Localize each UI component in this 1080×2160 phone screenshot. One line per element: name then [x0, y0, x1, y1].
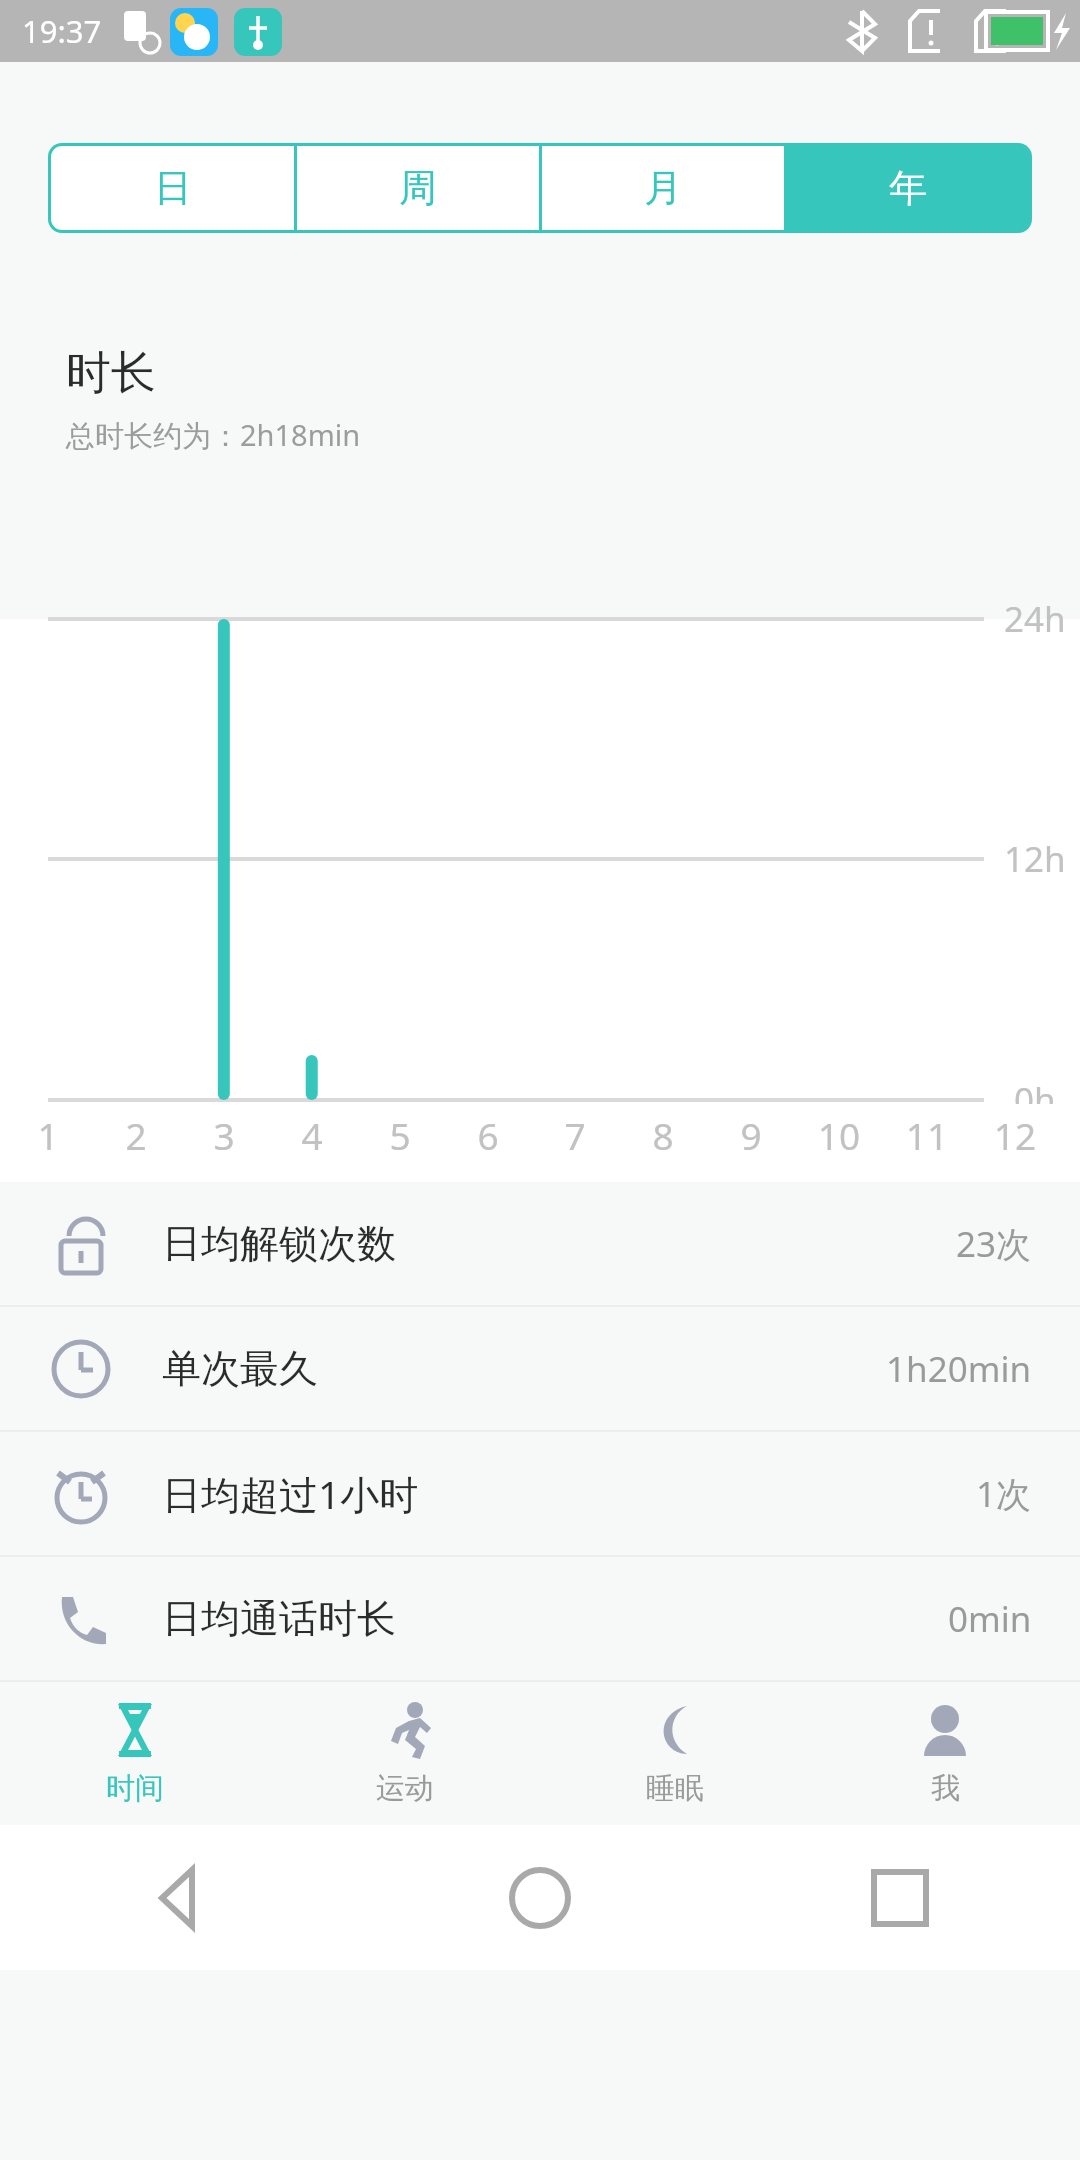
staticText: 23次 [956, 1220, 1032, 1268]
button[interactable]: 日均解锁次数 [0, 1182, 1080, 1305]
staticText: 日均超过1小时 [162, 1467, 419, 1520]
staticText: 时间 [106, 1770, 164, 1807]
staticText: 6 [463, 1110, 513, 1160]
staticText: 9 [726, 1110, 776, 1160]
staticText: 2 [111, 1110, 161, 1160]
staticText: 我 [931, 1770, 960, 1807]
staticText: 10 [814, 1110, 864, 1160]
staticText: 12h [1004, 835, 1066, 883]
button[interactable]: Back [0, 1825, 360, 1970]
button[interactable]: 周 [297, 146, 539, 230]
button[interactable]: 日均超过1小时 [0, 1432, 1080, 1555]
staticText: 总时长约为：2h18min [66, 415, 361, 455]
staticText: 睡眠 [646, 1770, 704, 1807]
button[interactable]: Home [360, 1825, 720, 1970]
staticText: 日均通话时长 [162, 1594, 396, 1643]
staticText: 4 [287, 1110, 337, 1160]
staticText: 1h20min [886, 1345, 1032, 1393]
button[interactable]: 我 [810, 1682, 1080, 1825]
staticText: 5 [375, 1110, 425, 1160]
staticText: 0h [1014, 1076, 1056, 1104]
staticText: 运动 [376, 1770, 434, 1807]
button[interactable]: Recents [720, 1825, 1080, 1970]
button[interactable]: 睡眠 [540, 1682, 810, 1825]
staticText: 单次最久 [162, 1344, 318, 1393]
staticText: 8 [638, 1110, 688, 1160]
staticText: 周 [399, 164, 437, 212]
staticText: 0min [948, 1595, 1032, 1643]
staticText: 1次 [976, 1470, 1032, 1518]
button[interactable]: 月 [542, 146, 784, 230]
button[interactable]: 时间 [0, 1682, 270, 1825]
staticText: 11 [902, 1110, 952, 1160]
staticText: 24h [1004, 595, 1066, 643]
button[interactable]: 运动 [270, 1682, 540, 1825]
staticText: 月 [644, 164, 682, 212]
staticText: 12 [990, 1110, 1040, 1160]
staticText: 1 [23, 1110, 73, 1160]
staticText: 日均解锁次数 [162, 1219, 396, 1268]
staticText: 3 [199, 1110, 249, 1160]
staticText: 日 [154, 164, 192, 212]
staticText: 19:37 [22, 10, 102, 52]
button[interactable]: 年 [787, 146, 1029, 230]
staticText: 年 [889, 164, 927, 212]
button[interactable]: 日 [51, 146, 294, 230]
button[interactable]: 单次最久 [0, 1307, 1080, 1430]
staticText: 7 [550, 1110, 600, 1160]
button[interactable]: 日均通话时长 [0, 1557, 1080, 1680]
staticText: 时长 [66, 345, 156, 402]
